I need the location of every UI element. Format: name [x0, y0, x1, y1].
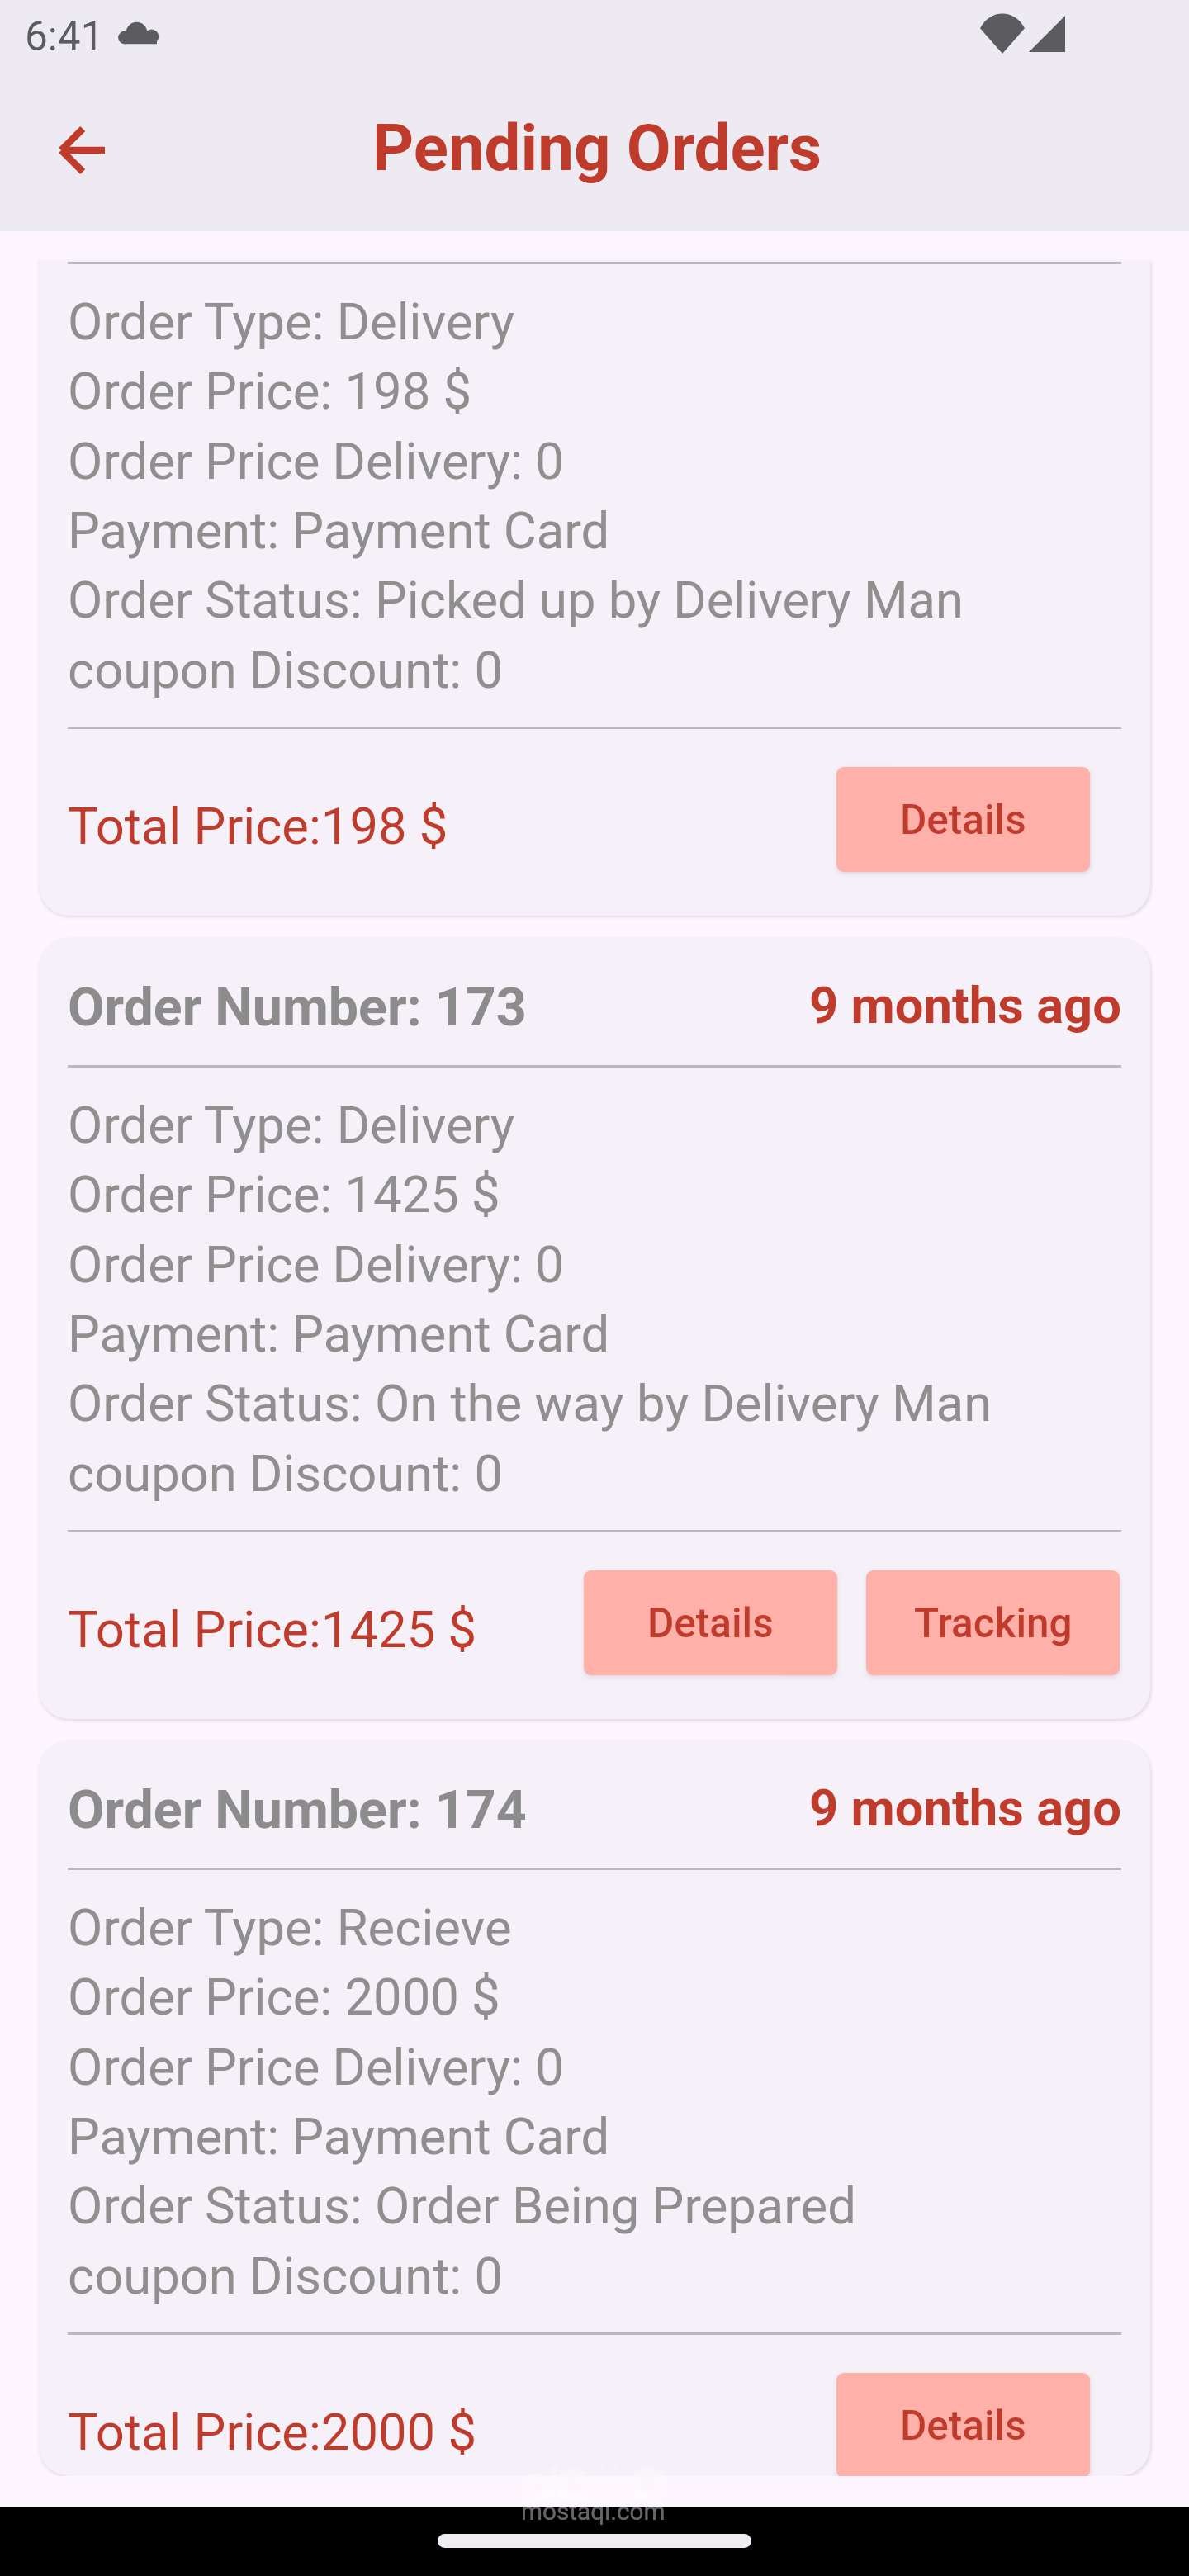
staticText: Order Price Delivery: 0 [68, 432, 564, 491]
staticText: Pending Orders [372, 111, 822, 186]
staticText: 9 months ago [809, 1778, 1121, 1838]
staticText: coupon Discount: 0 [68, 641, 504, 700]
staticText: Order Price Delivery: 0 [68, 1235, 564, 1295]
staticText: Order Status: Order Being Prepared [68, 2176, 856, 2236]
staticText: Order Type: Delivery [68, 1096, 515, 1155]
staticText: 6:41 [25, 12, 104, 60]
staticText: mostaqi.com [521, 2497, 666, 2526]
button[interactable]: Order Number: 174 [39, 1740, 1150, 2476]
staticText: Total Price:198 $ [68, 797, 448, 856]
staticText: Details [900, 796, 1026, 844]
staticText: Details [900, 2402, 1026, 2450]
staticText: Order Price: 1425 $ [68, 1165, 500, 1224]
staticText: coupon Discount: 0 [68, 1444, 504, 1503]
staticText: Order Type: Delivery [68, 292, 515, 352]
staticText: Order Number: 173 [68, 976, 527, 1039]
staticText: Total Price:1425 $ [68, 1600, 476, 1660]
staticText: Payment: Payment Card [68, 2107, 610, 2166]
staticText: Details [647, 1599, 774, 1647]
staticText: Payment: Payment Card [68, 501, 610, 561]
button[interactable]: Back [21, 91, 140, 210]
button[interactable]: Order Type: Delivery [39, 260, 1150, 916]
staticText: Order Status: On the way by Delivery Man [68, 1374, 992, 1433]
button[interactable]: Details [584, 1570, 837, 1675]
staticText: Order Price: 198 $ [68, 362, 472, 421]
staticText: Order Status: Picked up by Delivery Man [68, 571, 964, 630]
button[interactable]: Order Number: 173 [39, 938, 1150, 1719]
staticText: Tracking [914, 1599, 1073, 1647]
staticText: 9 months ago [809, 976, 1121, 1035]
staticText: coupon Discount: 0 [68, 2247, 504, 2306]
staticText: Order Price Delivery: 0 [68, 2038, 564, 2097]
staticText: Payment: Payment Card [68, 1305, 610, 1364]
staticText: Order Price: 2000 $ [68, 1968, 500, 2027]
button[interactable]: Details [836, 767, 1090, 872]
staticText: Order Type: Recieve [68, 1898, 512, 1958]
button[interactable]: Details [836, 2373, 1090, 2476]
staticText: Order Number: 174 [68, 1778, 527, 1841]
button[interactable]: Tracking [866, 1570, 1120, 1675]
staticText: Total Price:2000 $ [68, 2403, 476, 2462]
